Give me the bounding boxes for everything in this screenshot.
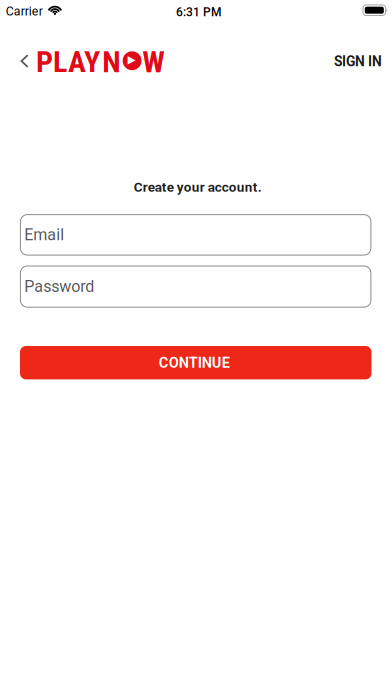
staticText: PLAY [36,44,100,80]
staticText: Carrier [6,4,43,19]
staticText: CONTINUE [159,354,230,371]
staticText: Password [24,277,94,296]
button[interactable]: SIGN IN [326,47,390,76]
button[interactable]: Back [15,48,34,73]
staticText: SIGN IN [334,53,382,70]
staticText: W [142,44,165,80]
staticText: Create your account. [134,179,262,195]
staticText: Email [24,225,64,244]
button[interactable]: CONTINUE [20,346,371,379]
staticText: 6:31 PM [176,5,221,19]
staticText: N [102,44,120,80]
